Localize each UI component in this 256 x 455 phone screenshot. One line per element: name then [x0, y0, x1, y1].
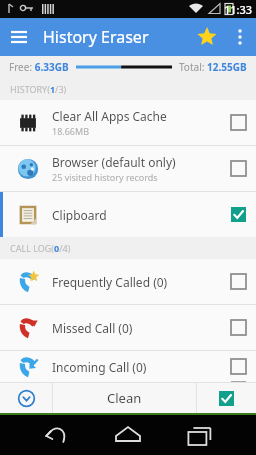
button[interactable]: Frequently Called (0): [0, 259, 256, 304]
button[interactable]: Open navigation menu: [0, 18, 38, 56]
button[interactable]: Favorites: [190, 20, 224, 54]
staticText: Total: 12.55GB: [179, 60, 247, 74]
button[interactable]: Incoming Call (0): [0, 351, 256, 382]
staticText: 25 visited history records: [52, 171, 158, 183]
staticText: Clear All Apps Cache: [52, 108, 167, 124]
staticText: HISTORY(1/3): [10, 83, 67, 95]
staticText: CALL LOG(0/4): [10, 242, 71, 254]
staticText: Clean: [107, 389, 142, 407]
button[interactable]: Browser (default only): [0, 146, 256, 191]
button[interactable]: Clipboard: [0, 192, 256, 237]
staticText: Clipboard: [52, 207, 107, 223]
staticText: Frequently Called (0): [52, 274, 168, 290]
staticText: Incoming Call (0): [52, 359, 147, 375]
staticText: History Eraser: [43, 26, 149, 48]
button[interactable]: Schedule: [0, 383, 52, 413]
staticText: Free: 6.33GB: [9, 60, 69, 74]
staticText: 18.66MB: [52, 125, 90, 137]
button[interactable]: Select all: [197, 383, 256, 413]
staticText: Browser (default only): [52, 154, 176, 170]
button[interactable]: Missed Call (0): [0, 305, 256, 350]
staticText: 11:33: [224, 2, 253, 17]
button[interactable]: Clear All Apps Cache: [0, 100, 256, 145]
button[interactable]: Clean: [53, 383, 196, 413]
staticText: Missed Call (0): [52, 320, 133, 336]
button[interactable]: More options: [224, 21, 256, 53]
